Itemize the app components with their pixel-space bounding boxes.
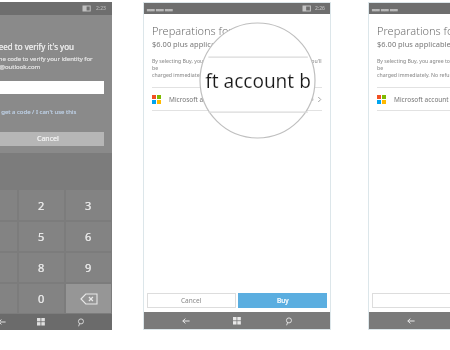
staticText: $6.00 plus applicable taxes: [377, 39, 450, 49]
staticText: 2: [38, 198, 45, 213]
button[interactable]: Cancel: [0, 132, 104, 146]
button[interactable]: I didn't get a code / I can't use this: [0, 108, 77, 116]
button[interactable]: Backspace: [66, 284, 111, 313]
button[interactable]: 6: [66, 222, 111, 251]
button[interactable]: 5: [19, 222, 64, 251]
staticText: Preparations for Search: [377, 23, 450, 38]
button[interactable]: 2: [19, 190, 64, 220]
staticText: 3: [85, 198, 92, 213]
staticText: Enter the code to verify your identity f…: [0, 55, 93, 63]
staticText: By selecting Buy, you agree to the Windo…: [152, 57, 322, 71]
button[interactable]: 8: [19, 253, 64, 282]
button[interactable]: Cancel: [372, 293, 450, 308]
staticText: charged immediately. No refunds.: [152, 71, 235, 78]
button[interactable]: Start: [33, 314, 49, 330]
staticText: We need to verify it's you: [0, 41, 74, 52]
staticText: 0: [38, 291, 45, 306]
staticText: 6: [85, 229, 92, 244]
staticText: j••••••••@outlook.com: [0, 63, 41, 71]
staticText: 8: [38, 260, 45, 275]
button[interactable]: Search: [73, 314, 89, 330]
button[interactable]: Buy: [238, 293, 327, 308]
staticText: Cancel: [37, 134, 59, 144]
staticText: 2:26: [315, 5, 325, 12]
staticText: ▃▃ ▃▃ ▃▃: [372, 5, 398, 12]
staticText: Microsoft account balance: [394, 95, 450, 104]
staticText: $6.00 plus applicable taxes: [152, 39, 247, 49]
staticText: Change: [292, 95, 314, 103]
staticText: By selecting Buy, you agree to the Windo…: [377, 57, 450, 71]
button[interactable]: 9: [66, 253, 111, 282]
staticText: ft account b: [205, 68, 311, 94]
staticText: 9: [85, 260, 92, 275]
staticText: Microsoft account balance: [169, 95, 250, 104]
staticText: Buy: [277, 296, 289, 305]
button[interactable]: Microsoft account balance: [152, 88, 322, 110]
button[interactable]: Start: [228, 312, 246, 330]
staticText: Preparations for Search: [152, 23, 270, 38]
staticText: ▃▃ ▃▃ ▃▃: [147, 5, 173, 12]
button[interactable]: Microsoft account balance: [377, 88, 450, 110]
staticText: Cancel: [181, 296, 202, 305]
button[interactable]: Back: [0, 314, 10, 330]
staticText: charged immediately. No refunds.: [377, 71, 450, 78]
button[interactable]: Back: [177, 312, 195, 330]
staticText: 2:23: [96, 5, 106, 12]
button[interactable]: Back: [402, 312, 420, 330]
button[interactable]: Search: [280, 312, 298, 330]
button[interactable]: Cancel: [147, 293, 236, 308]
button[interactable]: 3: [66, 190, 111, 220]
staticText: 5: [38, 229, 45, 244]
button[interactable]: 0: [19, 284, 64, 313]
